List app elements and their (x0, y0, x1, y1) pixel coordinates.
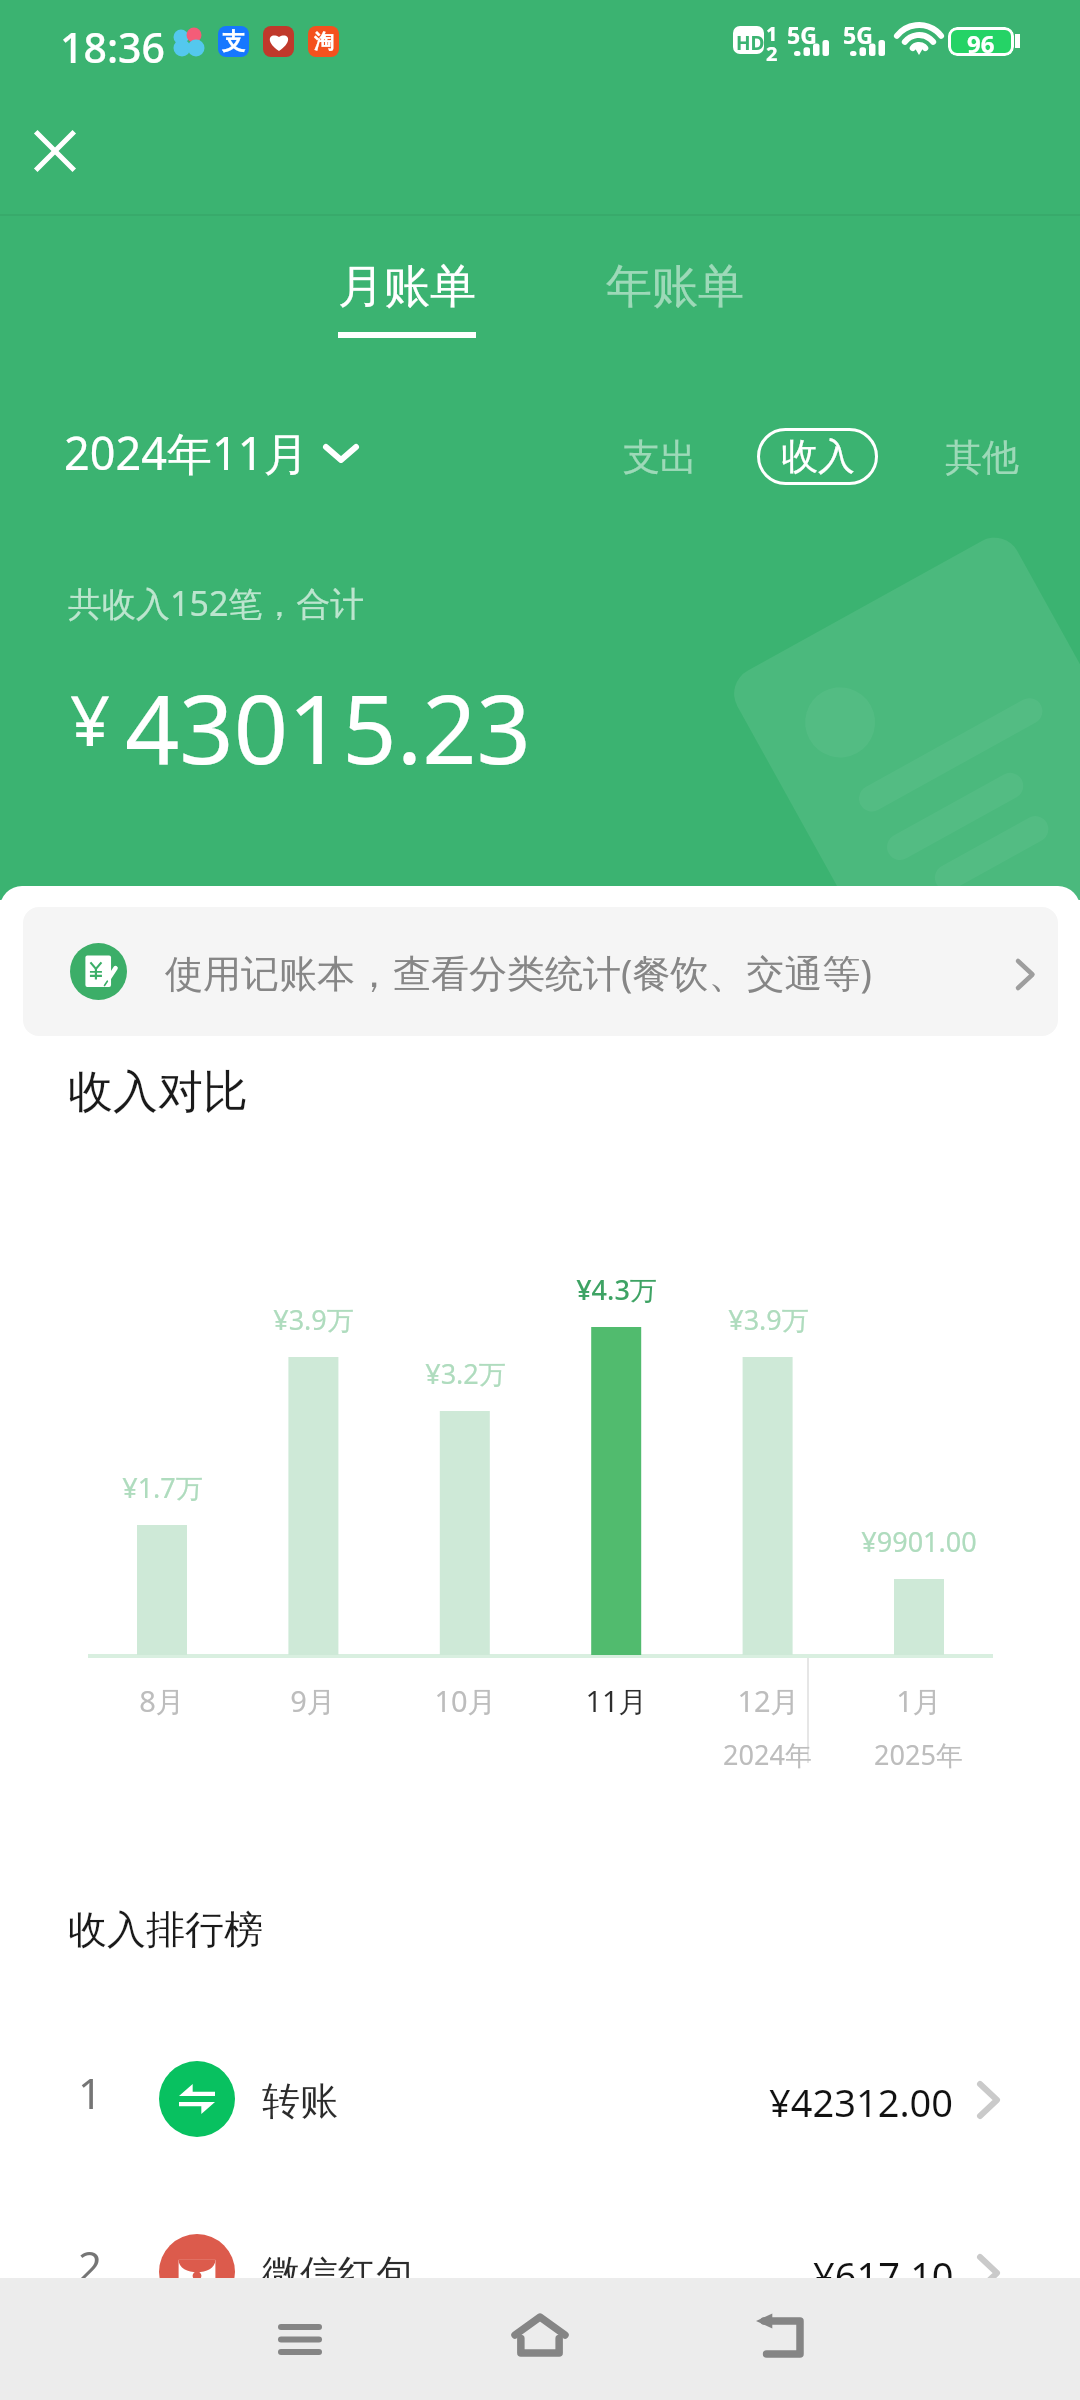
button[interactable]: 月账单 (322, 258, 492, 338)
staticText: ¥4.3万 (576, 1271, 657, 1308)
staticText: 11月 (585, 1681, 648, 1721)
staticText: 43015.23 (125, 662, 531, 782)
staticText: ¥1.7万 (122, 1469, 203, 1506)
staticText: 8月 (139, 1681, 185, 1721)
button[interactable]: 2 (0, 2217, 1080, 2327)
staticText: ¥3.9万 (728, 1301, 809, 1338)
button[interactable]: 1 (0, 2044, 1080, 2154)
staticText: 收入排行榜 (68, 1905, 263, 1954)
button[interactable]: Back (720, 2276, 840, 2398)
button[interactable]: 年账单 (590, 258, 760, 316)
staticText: 1 (766, 20, 778, 47)
staticText: 年账单 (606, 258, 744, 316)
staticText: ¥ (70, 671, 111, 766)
button[interactable]: Recent apps (240, 2278, 360, 2400)
staticText: 5G (787, 19, 817, 50)
button[interactable]: Close (17, 113, 93, 189)
staticText: ¥9901.00 (861, 1523, 977, 1560)
staticText: ¥3.2万 (425, 1355, 506, 1392)
button[interactable]: 收入 (757, 428, 878, 485)
staticText: 2024年 (723, 1736, 812, 1773)
staticText: 18:36 (60, 19, 165, 75)
staticText: 2 (766, 40, 778, 67)
staticText: 支出 (623, 434, 697, 481)
staticText: 5G (843, 19, 873, 50)
staticText: 2024年11月 (64, 422, 309, 483)
button[interactable]: 其他 (929, 422, 1035, 493)
staticText: 月账单 (338, 258, 476, 316)
staticText: 2 (78, 2237, 103, 2294)
staticText: 10月 (434, 1681, 497, 1721)
staticText: 12月 (737, 1681, 800, 1721)
staticText: 2025年 (874, 1736, 963, 1773)
staticText: ¥42312.00 (769, 2076, 954, 2128)
staticText: ¥617.10 (813, 2249, 954, 2301)
staticText: 9月 (290, 1681, 336, 1721)
staticText: 转账 (262, 2077, 338, 2125)
staticText: 其他 (945, 434, 1019, 481)
staticText: 1月 (896, 1681, 942, 1721)
staticText: 96 (967, 27, 995, 56)
button[interactable]: 2024年11月 (64, 422, 359, 483)
staticText: ¥3.9万 (273, 1301, 354, 1338)
staticText: 微信红包 (262, 2250, 414, 2298)
staticText: 1 (78, 2064, 103, 2121)
staticText: 收入 (781, 433, 855, 480)
staticText: HD (736, 30, 764, 54)
button[interactable]: 支出 (607, 422, 713, 493)
staticText: 淘 (314, 29, 334, 54)
button[interactable]: 使用记账本，查看分类统计(餐饮、交通等) (23, 907, 1058, 1036)
staticText: 共收入152笔，合计 (68, 580, 365, 626)
staticText: 收入对比 (68, 1064, 248, 1121)
button[interactable]: Home (480, 2274, 600, 2396)
staticText: 支 (222, 27, 245, 56)
staticText: 使用记账本，查看分类统计(餐饮、交通等) (165, 946, 872, 998)
